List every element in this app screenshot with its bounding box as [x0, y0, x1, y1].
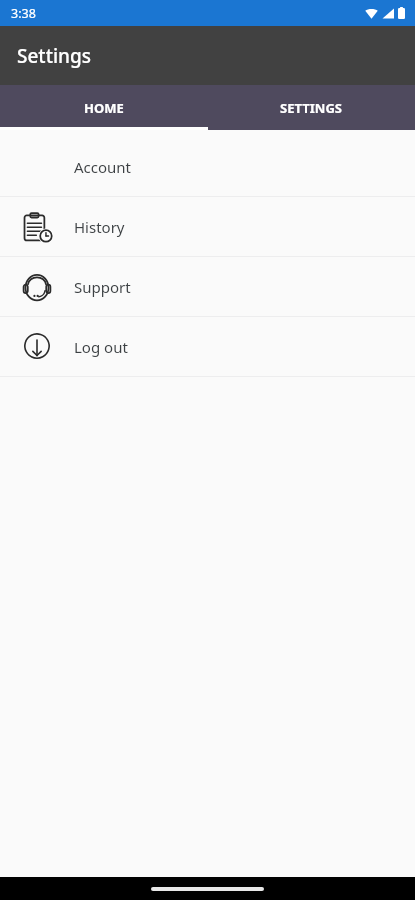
button[interactable]: SETTINGS [207, 85, 415, 130]
button[interactable]: HOME [0, 85, 207, 130]
button[interactable]: Account [0, 137, 415, 196]
staticText: Log out [74, 337, 128, 357]
staticText: Settings [17, 43, 91, 69]
staticText: Account [74, 157, 132, 177]
staticText: Support [74, 277, 131, 297]
button[interactable]: History [0, 197, 415, 256]
button[interactable]: Log out [0, 317, 415, 376]
staticText: SETTINGS [280, 99, 342, 117]
staticText: 3:38 [11, 5, 36, 22]
button[interactable]: Support [0, 257, 415, 316]
staticText: HOME [84, 99, 124, 117]
staticText: History [74, 217, 125, 237]
